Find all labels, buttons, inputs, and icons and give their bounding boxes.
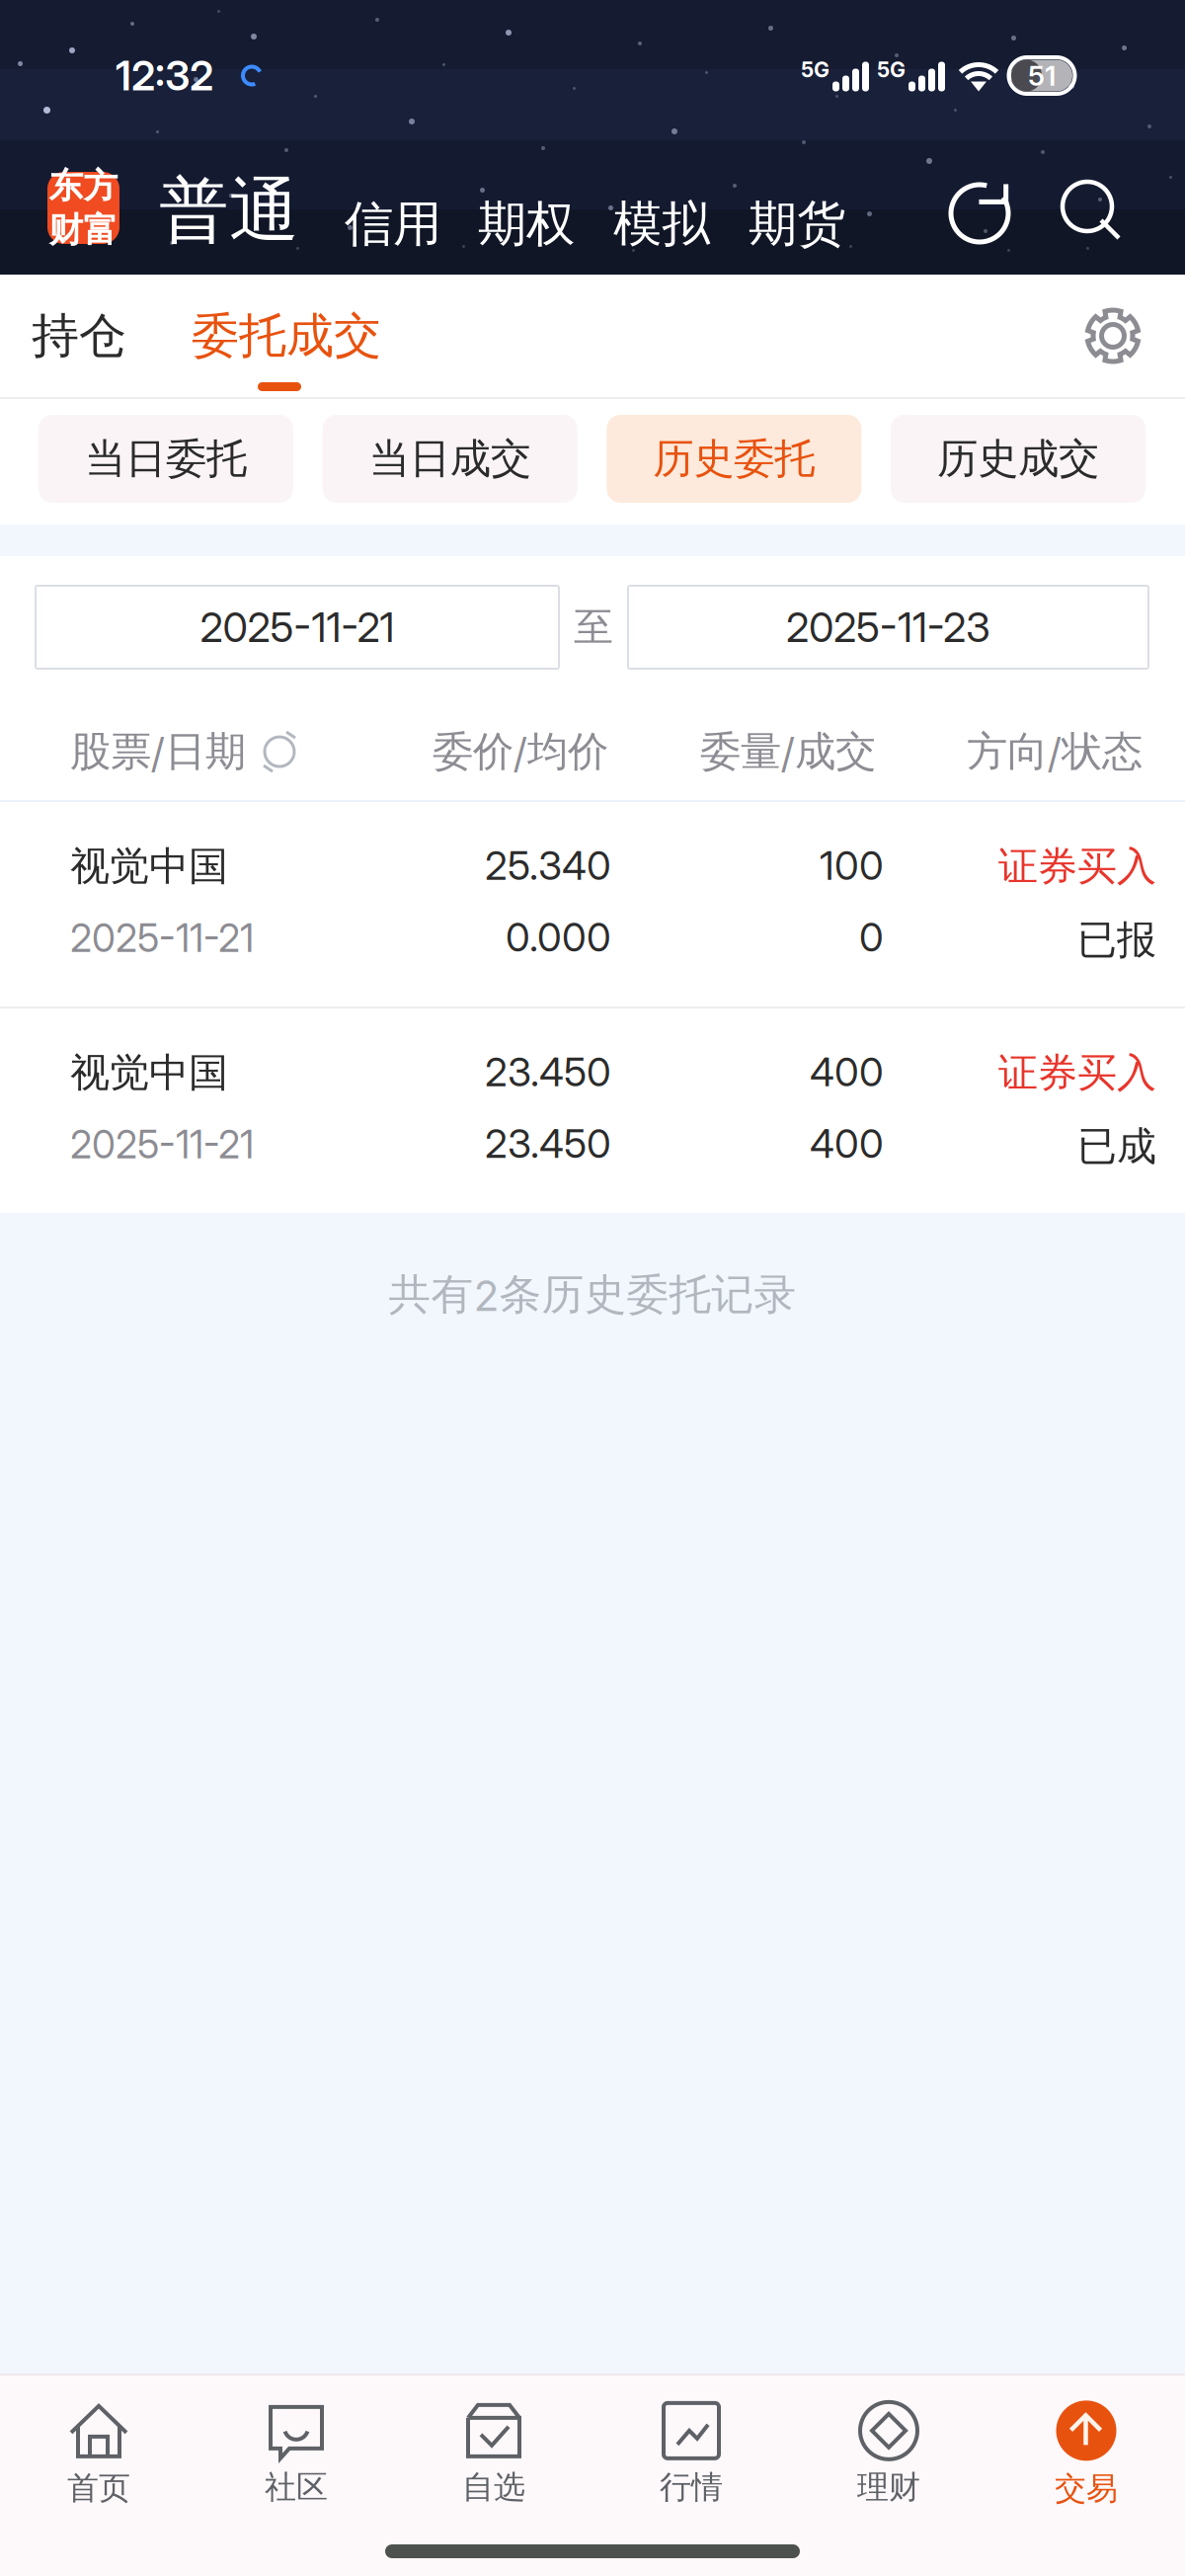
button[interactable]: 普通 bbox=[159, 167, 299, 255]
staticText: 2025-11-23 bbox=[786, 603, 990, 652]
staticText: 已成 bbox=[1077, 1121, 1156, 1171]
staticText: 5G bbox=[801, 57, 829, 82]
staticText: 信用 bbox=[345, 193, 441, 255]
button[interactable]: 视觉中国 bbox=[0, 1008, 1185, 1213]
button[interactable]: 信用 bbox=[345, 193, 441, 255]
staticText: 23.450 bbox=[485, 1048, 611, 1096]
staticText: 2025-11-21 bbox=[70, 915, 254, 961]
button[interactable]: 理财 bbox=[790, 2383, 987, 2526]
staticText: 5G bbox=[877, 57, 906, 82]
button[interactable]: 历史成交 bbox=[891, 415, 1145, 503]
staticText: 当日委托 bbox=[85, 433, 247, 485]
button[interactable]: 历史委托 bbox=[607, 415, 861, 503]
staticText: 委托成交 bbox=[192, 306, 381, 366]
staticText: 0 bbox=[859, 913, 884, 961]
button[interactable]: 期权 bbox=[478, 193, 575, 255]
staticText: 行情 bbox=[660, 2467, 723, 2507]
staticText: 历史委托 bbox=[653, 433, 815, 485]
staticText: 已报 bbox=[1077, 915, 1156, 965]
button[interactable]: 视觉中国 bbox=[0, 802, 1185, 1006]
button[interactable]: 搜索 bbox=[1060, 179, 1125, 244]
staticText: 400 bbox=[810, 1048, 884, 1096]
staticText: 视觉中国 bbox=[70, 842, 228, 891]
staticText: 当日成交 bbox=[369, 433, 531, 485]
button[interactable]: 交易 bbox=[987, 2383, 1185, 2526]
button[interactable]: 2025-11-23 bbox=[628, 586, 1148, 669]
staticText: 25.340 bbox=[485, 842, 611, 889]
staticText: 委量/成交 bbox=[700, 726, 876, 777]
staticText: 证券买入 bbox=[998, 842, 1156, 891]
staticText: 期权 bbox=[478, 193, 575, 255]
staticText: 持仓 bbox=[32, 306, 126, 366]
staticText: 委价/均价 bbox=[433, 726, 608, 777]
staticText: 400 bbox=[810, 1119, 884, 1167]
staticText: 首页 bbox=[67, 2468, 130, 2508]
button[interactable]: 首页 bbox=[0, 2383, 197, 2526]
button[interactable]: 2025-11-21 bbox=[36, 586, 559, 669]
button[interactable]: 当日成交 bbox=[323, 415, 577, 503]
staticText: 期货 bbox=[749, 193, 845, 255]
staticText: 0.000 bbox=[506, 913, 611, 961]
button[interactable]: 行情 bbox=[592, 2383, 790, 2526]
staticText: 2025-11-21 bbox=[70, 1121, 254, 1168]
button[interactable]: 持仓 bbox=[32, 275, 126, 397]
staticText: 共有2条历史委托记录 bbox=[389, 1268, 796, 1321]
button[interactable]: 设置 bbox=[1084, 307, 1142, 364]
staticText: 证券买入 bbox=[998, 1048, 1156, 1098]
staticText: 理财 bbox=[857, 2467, 920, 2507]
staticText: 交易 bbox=[1055, 2469, 1118, 2508]
staticText: 模拟 bbox=[613, 193, 710, 255]
button[interactable]: 社区 bbox=[197, 2383, 395, 2526]
staticText: 社区 bbox=[265, 2467, 328, 2507]
button[interactable]: 自选 bbox=[395, 2383, 592, 2526]
staticText: 方向/状态 bbox=[967, 726, 1143, 777]
staticText: 100 bbox=[820, 842, 884, 889]
button[interactable]: 模拟 bbox=[613, 193, 710, 255]
button[interactable]: 刷新 bbox=[949, 178, 1014, 245]
staticText: 2025-11-21 bbox=[200, 603, 395, 652]
button[interactable]: 当日委托 bbox=[39, 415, 293, 503]
staticText: 财富 bbox=[49, 208, 118, 252]
staticText: 股票/日期 bbox=[70, 726, 246, 777]
button[interactable]: 期货 bbox=[749, 193, 845, 255]
staticText: 自选 bbox=[462, 2467, 525, 2507]
staticText: 至 bbox=[574, 602, 613, 652]
staticText: 东方 bbox=[49, 164, 118, 207]
staticText: 普通 bbox=[159, 167, 299, 255]
staticText: 历史成交 bbox=[937, 433, 1099, 485]
staticText: 51 bbox=[1028, 59, 1056, 92]
staticText: 23.450 bbox=[485, 1119, 611, 1167]
button[interactable]: 委托成交 bbox=[192, 275, 381, 397]
staticText: 12:32 bbox=[116, 51, 213, 100]
button[interactable]: 东方财富 bbox=[47, 172, 119, 244]
staticText: 视觉中国 bbox=[70, 1048, 228, 1098]
